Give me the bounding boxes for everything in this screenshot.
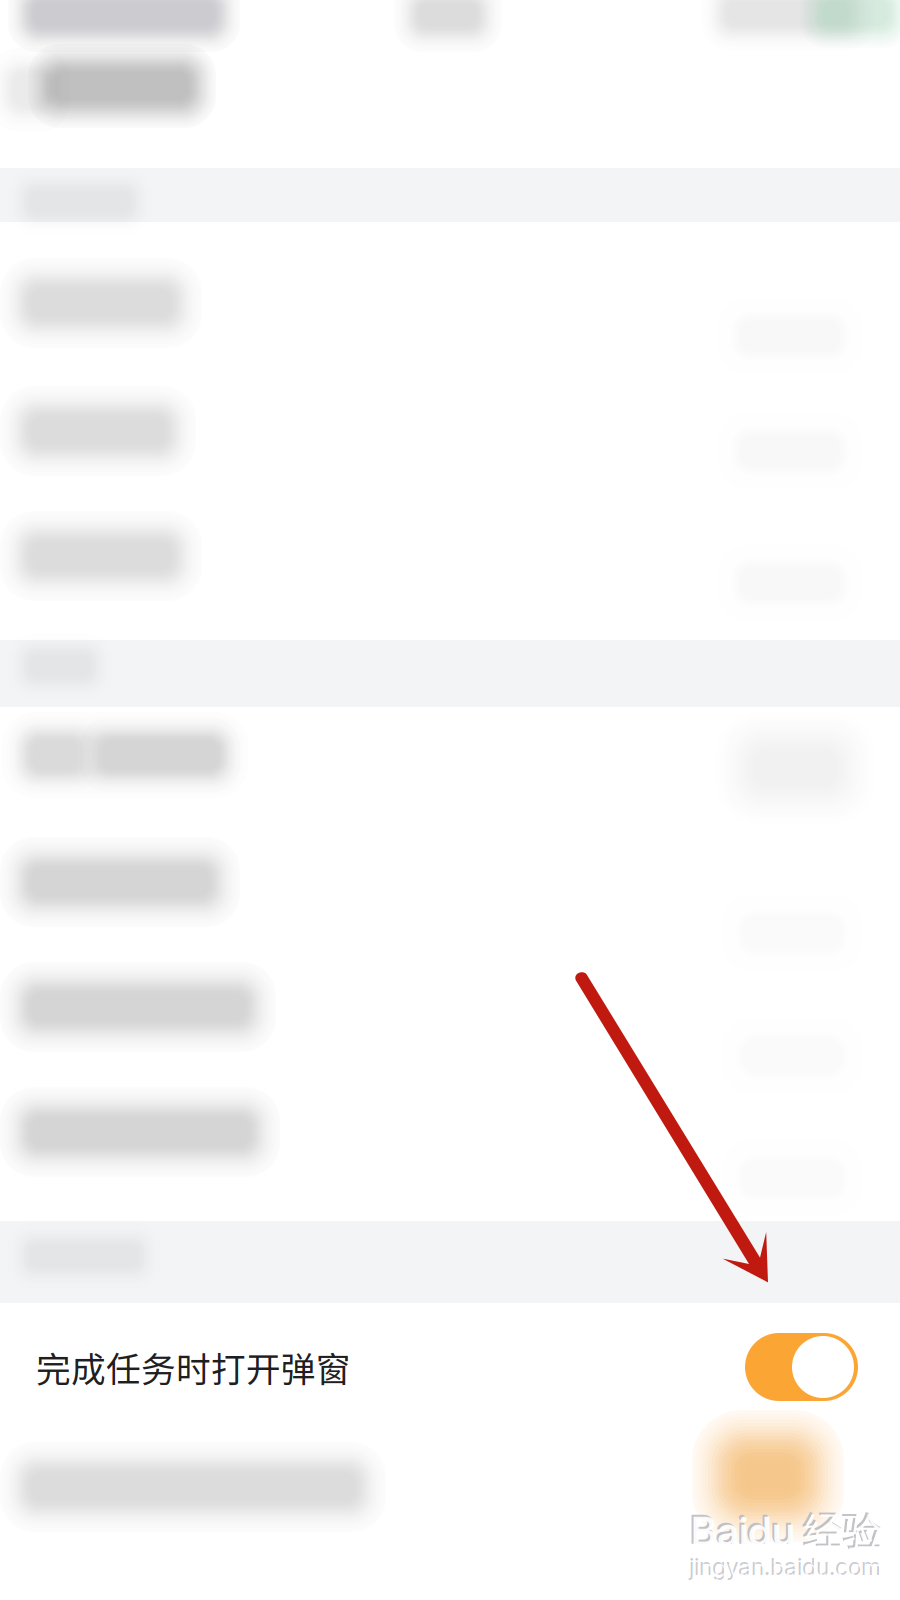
staticText: jingyan.baidu.com bbox=[689, 1553, 881, 1580]
staticText: 完成任务时打开弹窗 bbox=[36, 1342, 351, 1392]
staticText: Baidu 经验 bbox=[689, 1505, 882, 1556]
staticText: Baidu 经验 bbox=[691, 1507, 884, 1558]
button[interactable]: 完成任务时打开弹窗 bbox=[745, 1333, 858, 1401]
staticText: jingyan.baidu.com bbox=[691, 1555, 883, 1582]
